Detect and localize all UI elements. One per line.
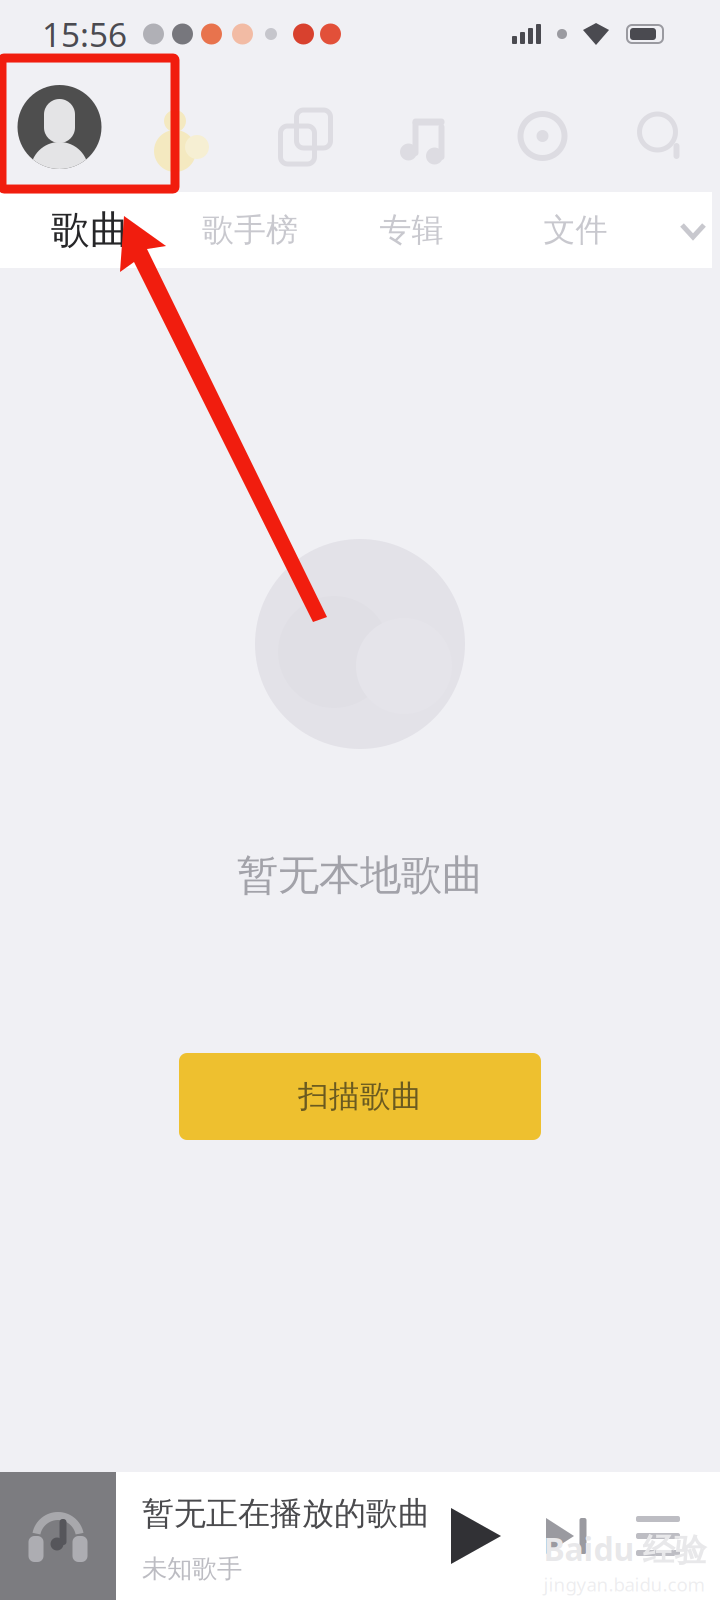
- button[interactable]: More categories: [658, 192, 720, 268]
- staticText: 未知歌手: [142, 1553, 242, 1584]
- button[interactable]: Identify song: [364, 62, 482, 192]
- staticText: 歌手榜: [202, 210, 298, 250]
- staticText: 扫描歌曲: [298, 1078, 422, 1115]
- staticText: jingyan.baidu.com: [543, 1572, 704, 1597]
- button[interactable]: 文件: [493, 192, 658, 268]
- button[interactable]: Playlist: [608, 1472, 708, 1600]
- button[interactable]: Now playing artwork: [0, 1472, 116, 1600]
- button[interactable]: 歌手榜: [170, 192, 330, 268]
- button[interactable]: Profile: [0, 62, 119, 192]
- button[interactable]: Transfer: [246, 62, 364, 192]
- button[interactable]: Search: [602, 62, 720, 192]
- staticText: 歌曲: [51, 206, 129, 254]
- staticText: 暂无本地歌曲: [237, 850, 483, 901]
- button[interactable]: 暂无正在播放的歌曲: [116, 1472, 432, 1600]
- button[interactable]: 专辑: [330, 192, 493, 268]
- button[interactable]: 扫描歌曲: [179, 1053, 541, 1140]
- staticText: 文件: [543, 210, 607, 250]
- button[interactable]: Driving mode: [482, 62, 602, 192]
- button[interactable]: 歌曲: [0, 192, 170, 268]
- staticText: 专辑: [379, 210, 443, 250]
- button[interactable]: Next track: [520, 1472, 608, 1600]
- staticText: Baidu 经验: [543, 1527, 706, 1570]
- button[interactable]: Play: [432, 1472, 520, 1600]
- staticText: 暂无正在播放的歌曲: [142, 1494, 430, 1533]
- staticText: 15:56: [42, 12, 127, 56]
- button[interactable]: Add friend: [119, 62, 246, 192]
